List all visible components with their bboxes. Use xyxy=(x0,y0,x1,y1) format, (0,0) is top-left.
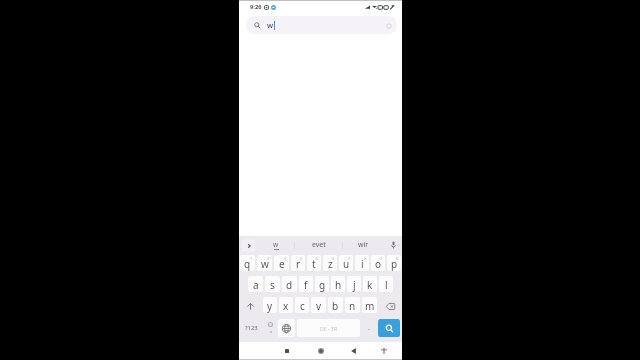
button[interactable]: y xyxy=(263,296,277,317)
button[interactable]: h xyxy=(331,275,345,296)
button[interactable]: o xyxy=(371,254,385,275)
staticText: DE - TR xyxy=(320,325,338,332)
staticText: s xyxy=(270,278,275,292)
staticText: g xyxy=(319,278,326,292)
staticText: q xyxy=(244,257,251,271)
button[interactable]: Home xyxy=(313,342,328,360)
staticText: v xyxy=(316,299,322,313)
staticText: d xyxy=(286,278,293,292)
button[interactable]: b xyxy=(328,296,343,317)
staticText: 9 xyxy=(380,256,383,261)
staticText: k xyxy=(367,278,373,292)
button[interactable]: Voice input xyxy=(384,236,402,254)
button[interactable]: w xyxy=(257,236,294,254)
button[interactable]: k xyxy=(363,275,377,296)
staticText: b xyxy=(332,299,339,313)
staticText: x xyxy=(283,299,289,313)
button[interactable]: f xyxy=(299,275,313,296)
staticText: c xyxy=(300,299,305,313)
staticText: ?123 xyxy=(245,324,258,332)
button[interactable]: More suggestions xyxy=(239,236,257,254)
staticText: 8 xyxy=(364,256,367,261)
button[interactable]: Emoji xyxy=(265,317,276,338)
button[interactable]: Change language xyxy=(278,317,295,338)
button[interactable]: e xyxy=(274,254,289,275)
staticText: o xyxy=(375,257,382,271)
staticText: z xyxy=(328,257,333,271)
staticText: n xyxy=(349,299,356,313)
button[interactable]: Back xyxy=(346,342,361,360)
button[interactable]: Recent apps xyxy=(279,342,294,360)
button[interactable]: wir xyxy=(343,236,384,254)
staticText: e xyxy=(279,257,285,271)
button[interactable]: z xyxy=(323,254,337,275)
button[interactable]: Search xyxy=(378,317,400,338)
button[interactable]: a xyxy=(248,275,263,296)
button[interactable]: m xyxy=(362,296,377,317)
staticText: i xyxy=(361,257,364,271)
button[interactable]: v xyxy=(311,296,326,317)
button[interactable]: l xyxy=(379,275,393,296)
staticText: u xyxy=(343,257,350,271)
button[interactable]: q xyxy=(240,254,255,275)
button[interactable]: n xyxy=(345,296,360,317)
staticText: j xyxy=(353,278,356,292)
button[interactable]: i xyxy=(355,254,369,275)
button[interactable]: r xyxy=(291,254,305,275)
button[interactable]: DE - TR xyxy=(297,317,360,338)
staticText: f xyxy=(304,278,308,292)
button[interactable]: Clear search xyxy=(384,21,393,30)
button[interactable]: Backspace xyxy=(379,296,401,317)
staticText: 1 xyxy=(250,256,253,261)
staticText: l xyxy=(385,278,388,292)
staticText: t xyxy=(312,257,316,271)
staticText: r xyxy=(296,257,301,271)
button[interactable]: evet xyxy=(295,236,342,254)
button[interactable]: u xyxy=(339,254,353,275)
staticText: 2 xyxy=(267,256,270,261)
button[interactable]: t xyxy=(307,254,321,275)
staticText: 6 xyxy=(332,256,335,261)
button[interactable]: d xyxy=(282,275,297,296)
staticText: . xyxy=(368,323,370,333)
button[interactable]: Hide keyboard xyxy=(376,342,391,360)
staticText: h xyxy=(335,278,342,292)
button[interactable]: ?123 xyxy=(240,317,263,338)
button[interactable]: w xyxy=(246,16,397,34)
staticText: w xyxy=(273,240,279,249)
button[interactable]: j xyxy=(347,275,361,296)
staticText: 0 xyxy=(396,256,399,261)
staticText: p xyxy=(391,257,398,271)
button[interactable]: Shift xyxy=(240,296,261,317)
staticText: evet xyxy=(312,240,326,250)
staticText: 7 xyxy=(348,256,351,261)
button[interactable]: w xyxy=(257,254,272,275)
button[interactable]: s xyxy=(265,275,280,296)
staticText: wir xyxy=(358,240,369,250)
staticText: m xyxy=(365,299,375,313)
button[interactable]: p xyxy=(387,254,401,275)
staticText: y xyxy=(267,299,273,313)
staticText: 5 xyxy=(316,256,319,261)
button[interactable]: g xyxy=(315,275,329,296)
button[interactable]: . xyxy=(362,317,376,338)
button[interactable]: c xyxy=(295,296,309,317)
staticText: 9:26 xyxy=(250,3,262,11)
staticText: w xyxy=(261,257,269,271)
staticText: 4 xyxy=(300,256,303,261)
staticText: w xyxy=(267,20,274,30)
button[interactable]: x xyxy=(279,296,293,317)
staticText: 3 xyxy=(284,256,287,261)
staticText: a xyxy=(253,278,259,292)
